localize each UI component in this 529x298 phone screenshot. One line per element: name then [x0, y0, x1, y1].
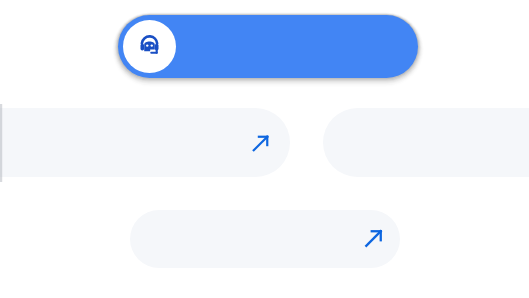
button[interactable]: Open link — [130, 210, 400, 268]
button[interactable]: Contact support — [118, 15, 418, 78]
button[interactable] — [0, 108, 290, 177]
